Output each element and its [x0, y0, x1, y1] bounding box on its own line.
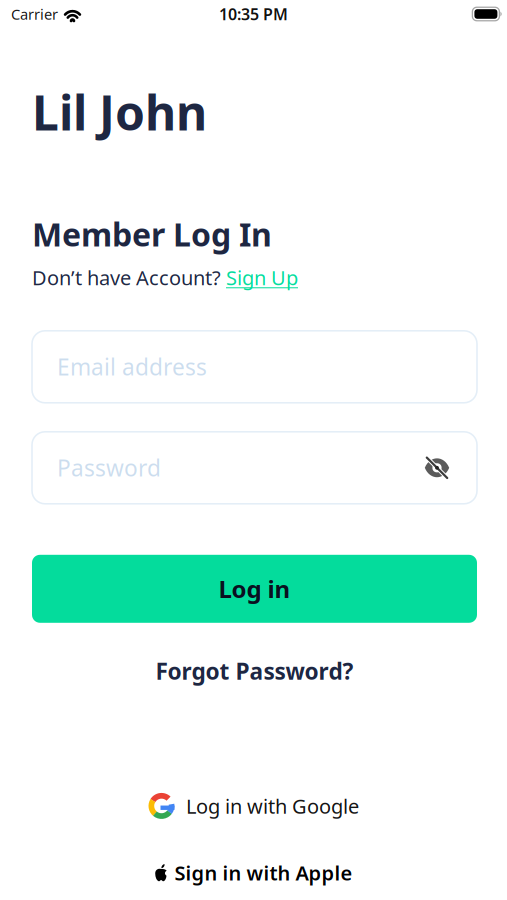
button[interactable]: Log in with Google	[148, 792, 359, 819]
staticText: Sign Up	[226, 264, 298, 291]
button[interactable]: Sign in with Apple	[154, 859, 352, 886]
button[interactable]: Forgot Password?	[32, 656, 477, 686]
staticText: Password	[57, 453, 161, 483]
staticText: Lil John	[32, 80, 207, 144]
staticText: Log in	[218, 573, 290, 605]
staticText: Email address	[57, 352, 207, 382]
button[interactable]: Log in	[32, 555, 477, 623]
staticText: Carrier	[11, 4, 58, 24]
staticText: Log in with Google	[186, 793, 359, 819]
staticText: 10:35 PM	[219, 3, 288, 25]
button[interactable]: Sign Up	[226, 264, 298, 291]
staticText: Don’t have Account?	[32, 264, 226, 291]
staticText: Member Log In	[32, 213, 272, 255]
staticText: Sign in with Apple	[174, 859, 352, 886]
staticText: Forgot Password?	[155, 656, 353, 686]
